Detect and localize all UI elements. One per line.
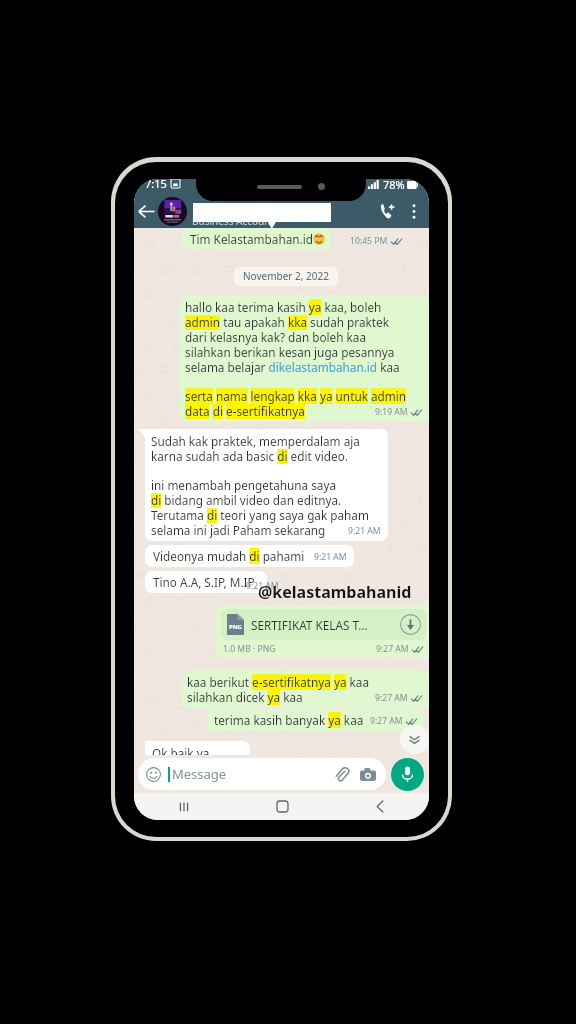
- button[interactable]: Sudah kak praktek, memperdalam aja karna…: [145, 429, 388, 541]
- button[interactable]: PNG: [216, 605, 429, 658]
- staticText: 9:21 AM: [314, 551, 347, 563]
- staticText: Sudah kak praktek, memperdalam aja karna…: [151, 433, 360, 464]
- staticText: Tim Kelastambahan.id: [190, 231, 313, 247]
- button[interactable]: hallo kaa terima kasih ya kaa, boleh adm…: [180, 295, 429, 422]
- button[interactable]: Tino A.A, S.IP, M.IP: [145, 571, 267, 593]
- staticText: 9:27 AM: [376, 643, 409, 655]
- staticText: ini menambah pengetahuna saya di bidang …: [151, 477, 369, 538]
- staticText: 9:21 AM: [348, 525, 381, 537]
- button[interactable]: kaa berikut e-sertifikatnya ya kaa silah…: [182, 670, 429, 708]
- staticText: Business Account: [192, 214, 275, 228]
- button[interactable]: Back: [331, 793, 429, 820]
- button[interactable]: Tim Kelastambahan.id: [182, 228, 331, 250]
- staticText: 9:27 AM: [370, 715, 403, 727]
- staticText: PNG: [229, 623, 242, 631]
- staticText: 7:15: [145, 179, 167, 191]
- staticText: @kelastambahanid: [258, 581, 412, 603]
- button[interactable]: Business Account: [192, 194, 373, 228]
- staticText: terima kasih banyak ya kaa: [214, 712, 364, 728]
- staticText: 78%: [383, 179, 405, 192]
- staticText: 10:45 PM: [350, 235, 388, 247]
- button[interactable]: More options: [403, 194, 425, 228]
- button[interactable]: Message: [138, 758, 386, 790]
- staticText: serta nama lengkap kka ya untuk admin da…: [185, 388, 407, 419]
- button[interactable]: Download: [400, 614, 421, 635]
- button[interactable]: Video call: [373, 194, 403, 228]
- button[interactable]: terima kasih banyak ya kaa: [206, 709, 423, 731]
- button[interactable]: November 2, 2022: [234, 267, 338, 286]
- button[interactable]: Camera: [359, 766, 376, 783]
- button[interactable]: Profile photo: [158, 197, 187, 226]
- button[interactable]: Back: [134, 194, 158, 228]
- button[interactable]: Attach: [333, 766, 350, 783]
- button[interactable]: Recent apps: [134, 793, 233, 820]
- staticText: 9:19 AM: [375, 406, 408, 418]
- staticText: hallo kaa terima kasih ya kaa, boleh adm…: [185, 299, 400, 375]
- staticText: 9:21 AM: [246, 580, 279, 592]
- staticText: Message: [172, 765, 227, 783]
- staticText: SERTIFIKAT KELAS T…: [251, 617, 368, 633]
- staticText: November 2, 2022: [243, 269, 329, 283]
- staticText: Tino A.A, S.IP, M.IP: [153, 574, 255, 590]
- button[interactable]: Videonya mudah di pahami: [145, 545, 354, 567]
- staticText: 9:27 AM: [375, 692, 408, 704]
- staticText: Videonya mudah di pahami: [153, 548, 305, 564]
- staticText: kaa berikut e-sertifikatnya ya kaa silah…: [187, 674, 370, 705]
- button[interactable]: Record voice message: [391, 758, 424, 791]
- button[interactable]: Ok baik ya: [145, 741, 250, 761]
- button[interactable]: Home: [233, 793, 331, 820]
- button[interactable]: Scroll to bottom: [400, 725, 429, 754]
- staticText: Ok baik ya: [152, 745, 210, 761]
- staticText: 1.0 MB · PNG: [223, 643, 276, 655]
